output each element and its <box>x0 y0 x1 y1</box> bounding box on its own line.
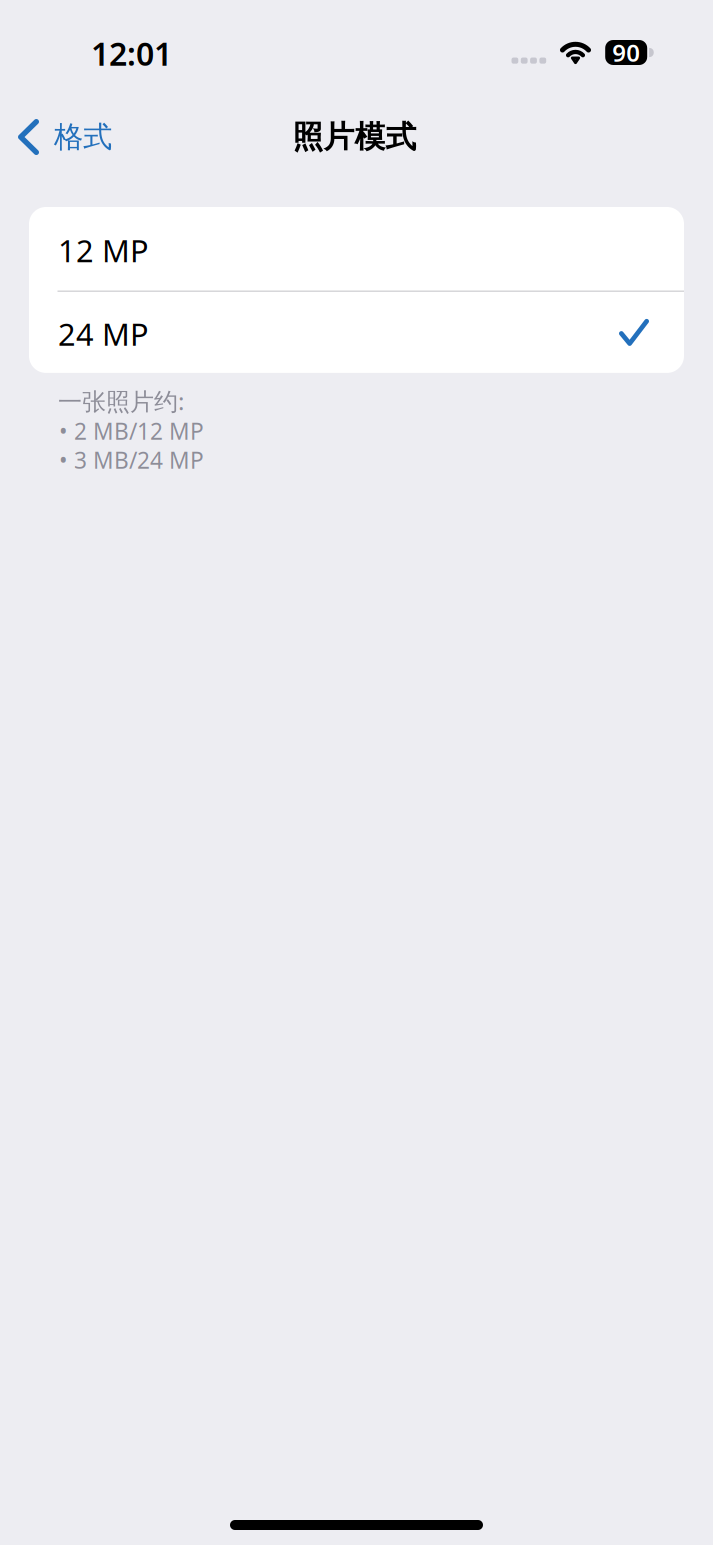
staticText: • 2 MB/12 MP <box>59 416 204 446</box>
staticText: 12 MP <box>58 230 149 271</box>
staticText: 照片模式 <box>292 118 416 156</box>
staticText: 12:01 <box>91 32 172 74</box>
staticText: 90 <box>612 37 640 68</box>
staticText: 格式 <box>54 119 112 155</box>
staticText: 一张照片约: <box>58 385 184 417</box>
button[interactable]: 12 MP <box>29 207 684 290</box>
staticText: • 3 MB/24 MP <box>59 445 204 475</box>
staticText: 24 MP <box>58 313 149 354</box>
button[interactable]: 24 MP <box>29 292 684 373</box>
button[interactable]: 返回 格式 <box>0 109 126 165</box>
